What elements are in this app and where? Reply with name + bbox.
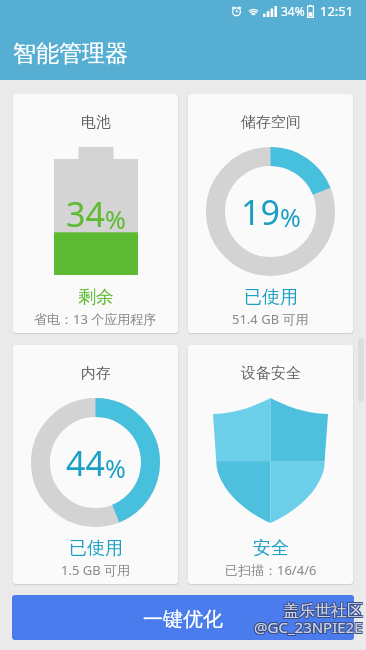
button[interactable]: 内存 — [13, 345, 178, 584]
staticText: 34 — [66, 191, 105, 237]
staticText: @GC_23NPIE2E — [254, 618, 363, 638]
staticText: 盖乐世社区 — [282, 601, 362, 621]
staticText: 已扫描：16/4/6 — [225, 561, 317, 579]
staticText: 盖乐世社区 — [282, 600, 362, 620]
staticText: 内存 — [81, 364, 111, 383]
staticText: 盖乐世社区 — [284, 600, 364, 620]
staticText: 盖乐世社区 — [282, 602, 362, 622]
staticText: 盖乐世社区 — [283, 602, 363, 622]
staticText: @GC_23NPIE2E — [253, 616, 362, 636]
staticText: 盖乐世社区 — [284, 602, 364, 622]
button[interactable]: 设备安全 — [188, 345, 353, 584]
staticText: @GC_23NPIE2E — [254, 617, 363, 637]
staticText: @GC_23NPIE2E — [254, 616, 363, 636]
staticText: 44 — [66, 440, 105, 486]
button[interactable]: 电池 — [13, 94, 178, 333]
staticText: 剩余 — [78, 286, 114, 309]
staticText: 盖乐世社区 — [283, 600, 363, 620]
staticText: 19 — [241, 189, 280, 235]
staticText: 12:51 — [320, 2, 354, 20]
staticText: 一键优化 — [143, 607, 223, 632]
staticText: 智能管理器 — [13, 39, 128, 68]
staticText: @GC_23NPIE2E — [253, 618, 362, 638]
staticText: @GC_23NPIE2E — [255, 616, 364, 636]
staticText: 盖乐世社区 — [283, 601, 363, 621]
staticText: 已使用 — [244, 286, 298, 309]
staticText: 储存空间 — [241, 113, 301, 132]
staticText: % — [105, 202, 126, 236]
staticText: @GC_23NPIE2E — [255, 618, 364, 638]
button[interactable]: 一键优化 — [12, 595, 354, 640]
staticText: 盖乐世社区 — [284, 601, 364, 621]
staticText: 设备安全 — [241, 364, 301, 383]
staticText: 安全 — [253, 537, 289, 560]
staticText: 省电：13 个应用程序 — [34, 310, 157, 328]
staticText: 34% — [281, 3, 305, 19]
staticText: 1.5 GB 可用 — [61, 561, 131, 579]
staticText: 51.4 GB 可用 — [232, 310, 309, 328]
button[interactable]: 储存空间 — [188, 94, 353, 333]
staticText: % — [280, 200, 301, 234]
staticText: % — [105, 451, 126, 485]
staticText: @GC_23NPIE2E — [253, 617, 362, 637]
staticText: @GC_23NPIE2E — [255, 617, 364, 637]
staticText: 电池 — [81, 113, 111, 132]
staticText: 已使用 — [69, 537, 123, 560]
